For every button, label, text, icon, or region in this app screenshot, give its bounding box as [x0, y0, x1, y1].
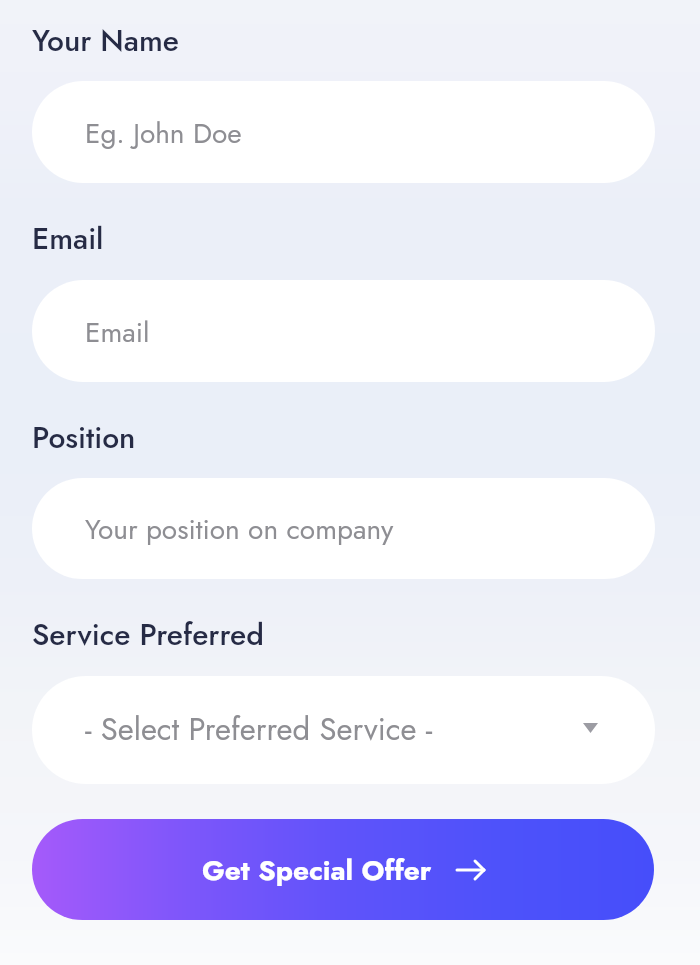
button[interactable]	[32, 81, 655, 183]
staticText: Email	[32, 205, 104, 265]
other: Continue	[456, 860, 485, 880]
staticText: Position	[32, 404, 136, 464]
button[interactable]: Get Special Offer	[32, 819, 654, 920]
staticText: Your position on company	[85, 498, 394, 554]
button[interactable]	[32, 478, 655, 579]
button[interactable]	[32, 676, 655, 784]
staticText: Service Preferred	[32, 601, 264, 661]
staticText: Your Name	[32, 7, 179, 67]
staticText: Get Special Offer	[202, 850, 432, 890]
staticText: - Select Preferred Service -	[85, 694, 433, 756]
button[interactable]: Open service list	[583, 723, 598, 733]
staticText: Eg. John Doe	[85, 102, 242, 158]
button[interactable]	[32, 280, 655, 382]
staticText: Email	[85, 301, 150, 357]
